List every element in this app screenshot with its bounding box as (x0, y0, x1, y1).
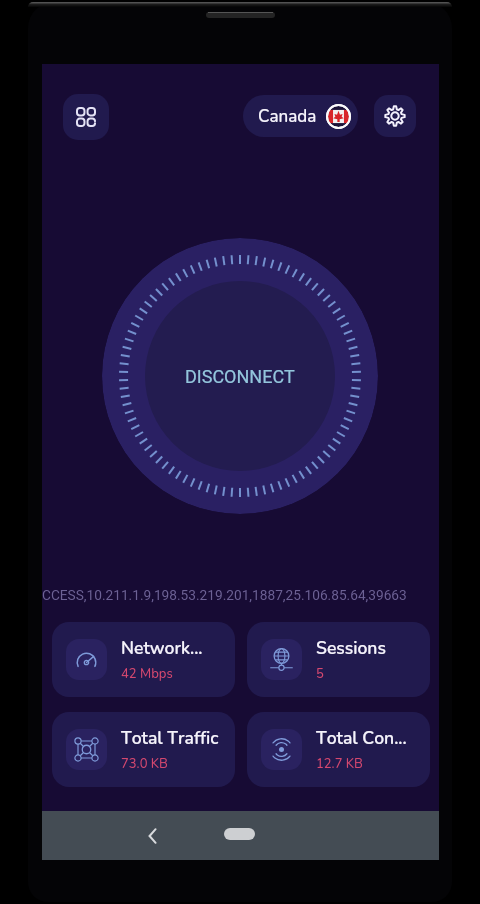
staticText: Total Con... (316, 726, 407, 750)
button[interactable]: Sessions (247, 622, 430, 697)
button[interactable]: Apps (63, 94, 109, 140)
staticText: Network... (121, 636, 203, 660)
button[interactable]: DISCONNECT (102, 238, 378, 514)
button[interactable]: Settings (374, 95, 416, 137)
button[interactable]: Back (139, 822, 167, 850)
button[interactable]: Total Traffic (52, 712, 235, 787)
staticText: 5 (316, 665, 324, 683)
staticText: Canada (258, 105, 317, 128)
staticText: 73.0 KB (121, 755, 168, 773)
button[interactable]: Total Con... (247, 712, 430, 787)
button[interactable]: Home (224, 828, 255, 840)
staticText: DISCONNECT (185, 366, 295, 387)
staticText: CCESS,10.211.1.9,198.53.219.201,1887,25.… (42, 587, 407, 603)
button[interactable]: Network... (52, 622, 235, 697)
staticText: 12.7 KB (316, 755, 363, 773)
staticText: Total Traffic (121, 726, 219, 750)
staticText: 42 Mbps (121, 665, 173, 683)
button[interactable]: Canada (243, 95, 358, 137)
staticText: Sessions (316, 636, 386, 660)
